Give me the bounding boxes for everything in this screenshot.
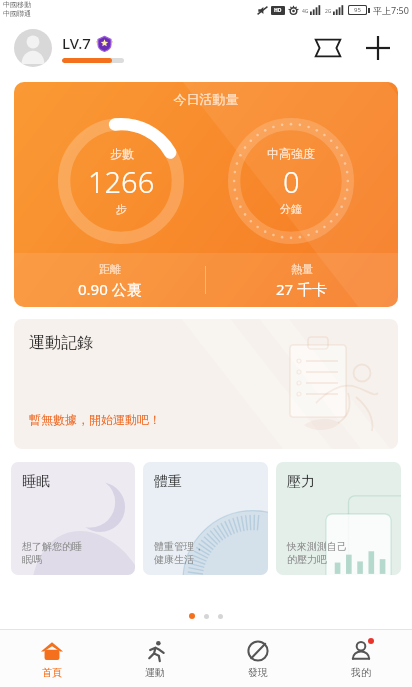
staticText: 體重管理， 健康生活 <box>154 540 204 566</box>
staticText: 中國聯通 <box>3 9 31 18</box>
staticText: 2G <box>325 8 332 15</box>
button[interactable]: 距離 <box>14 262 205 299</box>
staticText: 4G <box>302 8 309 15</box>
staticText: 中高強度 <box>267 146 315 161</box>
button[interactable]: 運動 <box>103 630 206 687</box>
button[interactable]: 熱量 <box>206 262 398 299</box>
staticText: 中國移動 <box>3 0 31 9</box>
staticText: 我的 <box>351 666 371 679</box>
staticText: 暫無數據，開始運動吧！ <box>29 412 161 427</box>
button[interactable]: 體重 <box>143 462 268 575</box>
staticText: 熱量 <box>291 262 313 276</box>
staticText: 95 <box>354 6 361 14</box>
staticText: 0.90 公裏 <box>78 279 142 299</box>
staticText: 首頁 <box>42 666 62 679</box>
staticText: 運動 <box>145 666 165 679</box>
staticText: 運動記錄 <box>29 333 93 353</box>
button[interactable]: 壓力 <box>276 462 401 575</box>
staticText: 0 <box>283 162 300 201</box>
staticText: 27 千卡 <box>276 279 328 299</box>
staticText: 距離 <box>99 262 121 276</box>
button[interactable]: 運動記錄 <box>14 319 398 449</box>
button[interactable]: Profile avatar <box>14 29 52 67</box>
staticText: 壓力 <box>287 473 315 491</box>
button[interactable]: 今日活動量 <box>14 82 398 307</box>
staticText: 發現 <box>248 666 268 679</box>
staticText: 分鐘 <box>280 202 302 216</box>
staticText: 1266 <box>88 162 155 201</box>
button[interactable]: 我的 <box>309 630 412 687</box>
staticText: 想了解您的睡 眠嗎 <box>22 540 82 566</box>
staticText: 步數 <box>110 146 134 161</box>
staticText: 步 <box>116 202 127 216</box>
button[interactable]: Coupons <box>308 28 348 68</box>
staticText: 平上7:50 <box>373 4 409 16</box>
staticText: LV.7 <box>62 33 91 53</box>
button[interactable]: 發現 <box>206 630 309 687</box>
staticText: 今日活動量 <box>14 91 398 107</box>
staticText: 睡眠 <box>22 473 50 491</box>
staticText: 體重 <box>154 473 182 491</box>
button[interactable]: 睡眠 <box>11 462 135 575</box>
staticText: 快來測測自己 的壓力吧 <box>287 540 347 566</box>
button[interactable]: Add <box>358 28 398 68</box>
staticText: HD <box>274 7 282 14</box>
button[interactable]: 首頁 <box>0 630 103 687</box>
